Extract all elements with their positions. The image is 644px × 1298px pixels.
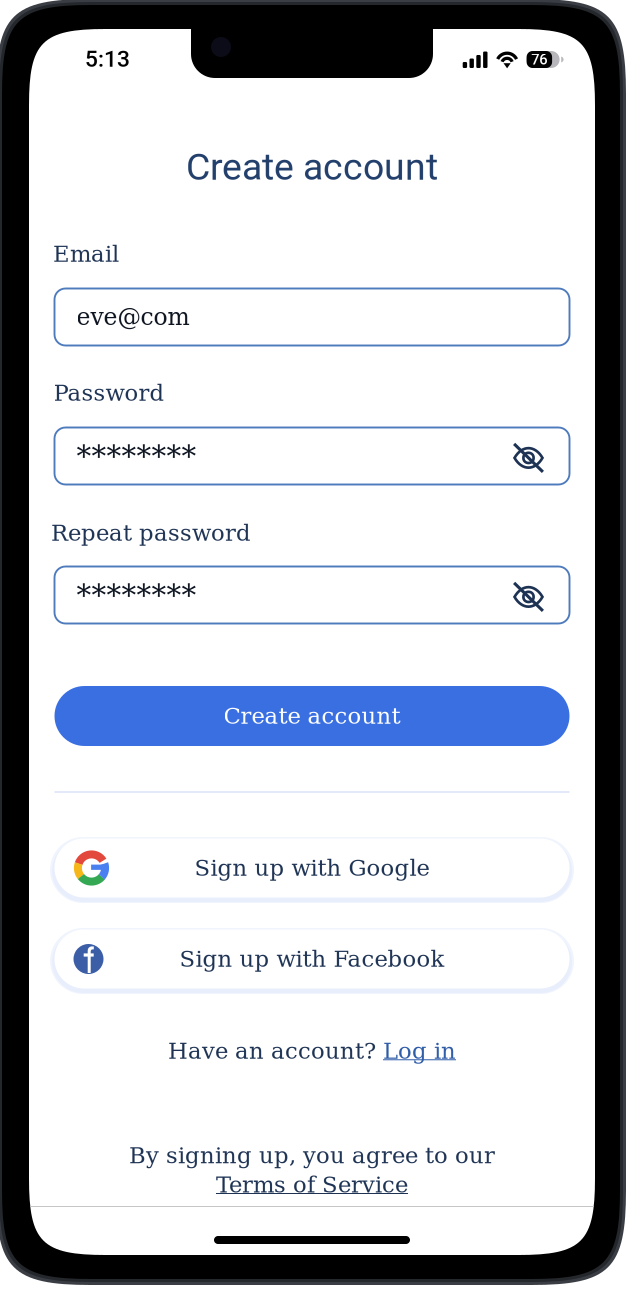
button[interactable]: Terms of Service [216,1171,408,1198]
button[interactable]: ******** [54,566,569,623]
staticText: By signing up, you agree to our [129,1142,495,1168]
staticText: Terms of Service [216,1171,408,1198]
staticText: ******** [76,439,196,473]
staticText: 5:13 [85,46,130,72]
button[interactable]: Sign up with Facebook [49,925,574,992]
staticText: Email [53,241,119,267]
staticText: Have an account? [168,1038,376,1064]
button[interactable]: Have an account? [168,1038,456,1064]
staticText: Repeat password [51,520,251,546]
staticText: eve@com [76,303,189,331]
button[interactable]: eve@com [54,288,569,345]
staticText: 76 [531,51,547,68]
button[interactable]: ******** [54,427,569,484]
button[interactable]: Sign up with Google [49,834,574,901]
staticText: Password [53,380,164,406]
staticText: ******** [76,578,196,612]
button[interactable]: Create account [54,686,569,746]
staticText: Sign up with Facebook [179,946,444,972]
staticText: Create account [223,703,400,729]
staticText: Create account [186,145,438,189]
staticText: Log in [383,1038,456,1064]
staticText: Sign up with Google [194,855,429,881]
